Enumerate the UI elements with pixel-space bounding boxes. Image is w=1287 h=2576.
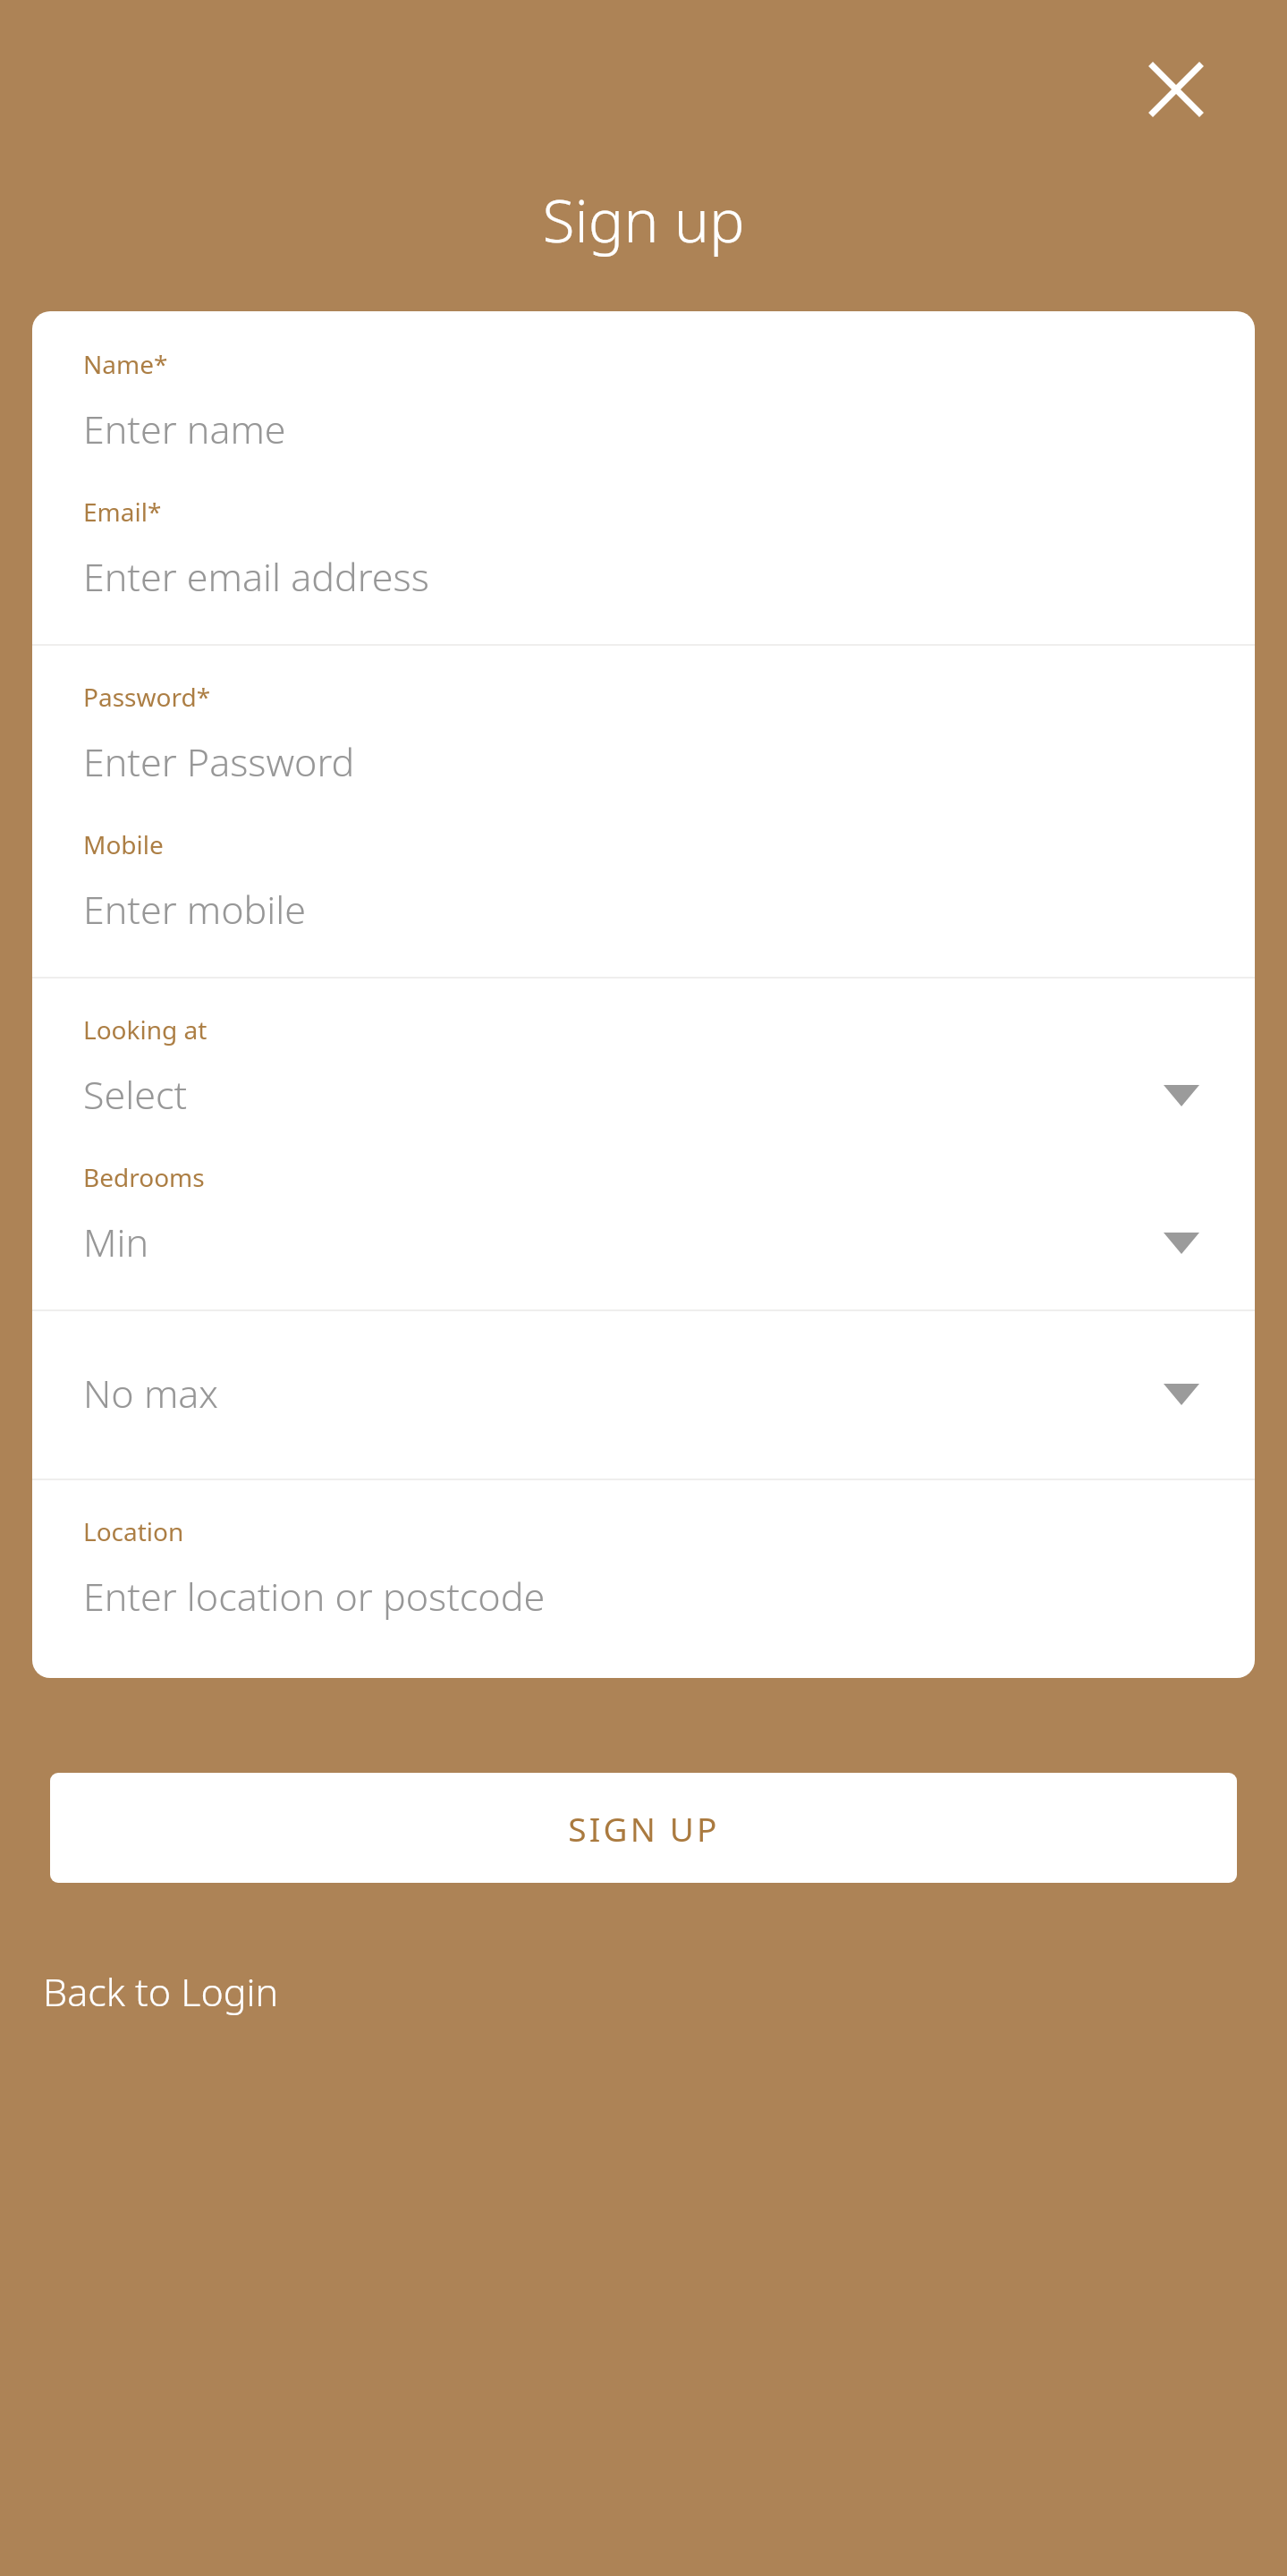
button[interactable]: Looking at	[32, 979, 1255, 1160]
staticText: Password*	[83, 680, 211, 714]
button[interactable]: Name*	[32, 311, 1255, 495]
button[interactable]: Location	[32, 1480, 1255, 1678]
staticText: Sign up	[542, 179, 745, 259]
staticText: Back to Login	[43, 1965, 279, 2018]
button[interactable]: Mobile	[32, 827, 1255, 977]
staticText: Enter name	[83, 402, 286, 455]
staticText: Email*	[83, 495, 162, 529]
button[interactable]: Email*	[32, 495, 1255, 644]
staticText: Enter email address	[83, 550, 429, 603]
button[interactable]: No max	[32, 1311, 1255, 1479]
staticText: Bedrooms	[83, 1160, 205, 1194]
staticText: Select	[83, 1068, 188, 1121]
button[interactable]: SIGN UP	[50, 1773, 1237, 1883]
button[interactable]: Password*	[32, 646, 1255, 827]
button[interactable]: Bedrooms	[32, 1160, 1255, 1309]
staticText: Looking at	[83, 1013, 207, 1046]
staticText: Enter Password	[83, 735, 355, 788]
staticText: SIGN UP	[568, 1806, 720, 1851]
staticText: Location	[83, 1514, 184, 1548]
staticText: Mobile	[83, 827, 164, 861]
staticText: No max	[83, 1367, 219, 1419]
staticText: Name*	[83, 347, 168, 381]
staticText: Min	[83, 1216, 149, 1268]
staticText: Enter location or postcode	[83, 1570, 546, 1623]
staticText: Enter mobile	[83, 883, 307, 936]
button[interactable]: Back to Login	[43, 1965, 279, 2018]
button[interactable]: Close	[1135, 48, 1217, 131]
